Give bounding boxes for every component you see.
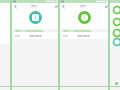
staticText: 完善个人信息可获得积分 xyxy=(63,29,92,32)
staticText: 昵称 xyxy=(63,34,69,37)
staticText: 资料 xyxy=(31,4,37,8)
button[interactable]: Contact xyxy=(113,18,120,26)
button[interactable]: 昵称 xyxy=(12,32,59,39)
button[interactable]: Contact xyxy=(113,29,120,37)
button[interactable]: Back xyxy=(60,3,66,9)
staticText: 请填写昵称 xyxy=(77,34,90,37)
button[interactable]: Change avatar xyxy=(78,11,91,24)
button[interactable]: Save xyxy=(103,3,109,9)
button[interactable]: Contact xyxy=(113,38,120,46)
staticText: 资料 xyxy=(80,4,86,8)
button[interactable]: Contact xyxy=(113,6,120,14)
button[interactable]: 昵称 xyxy=(60,32,109,39)
button[interactable]: Back xyxy=(12,3,18,9)
staticText: 昵称 xyxy=(15,34,21,37)
staticText: 请填写昵称 xyxy=(29,34,42,37)
button[interactable]: Change avatar xyxy=(29,11,42,24)
button[interactable]: Save xyxy=(53,3,59,9)
staticText: 完善个人信息可获得积分 xyxy=(15,29,44,32)
